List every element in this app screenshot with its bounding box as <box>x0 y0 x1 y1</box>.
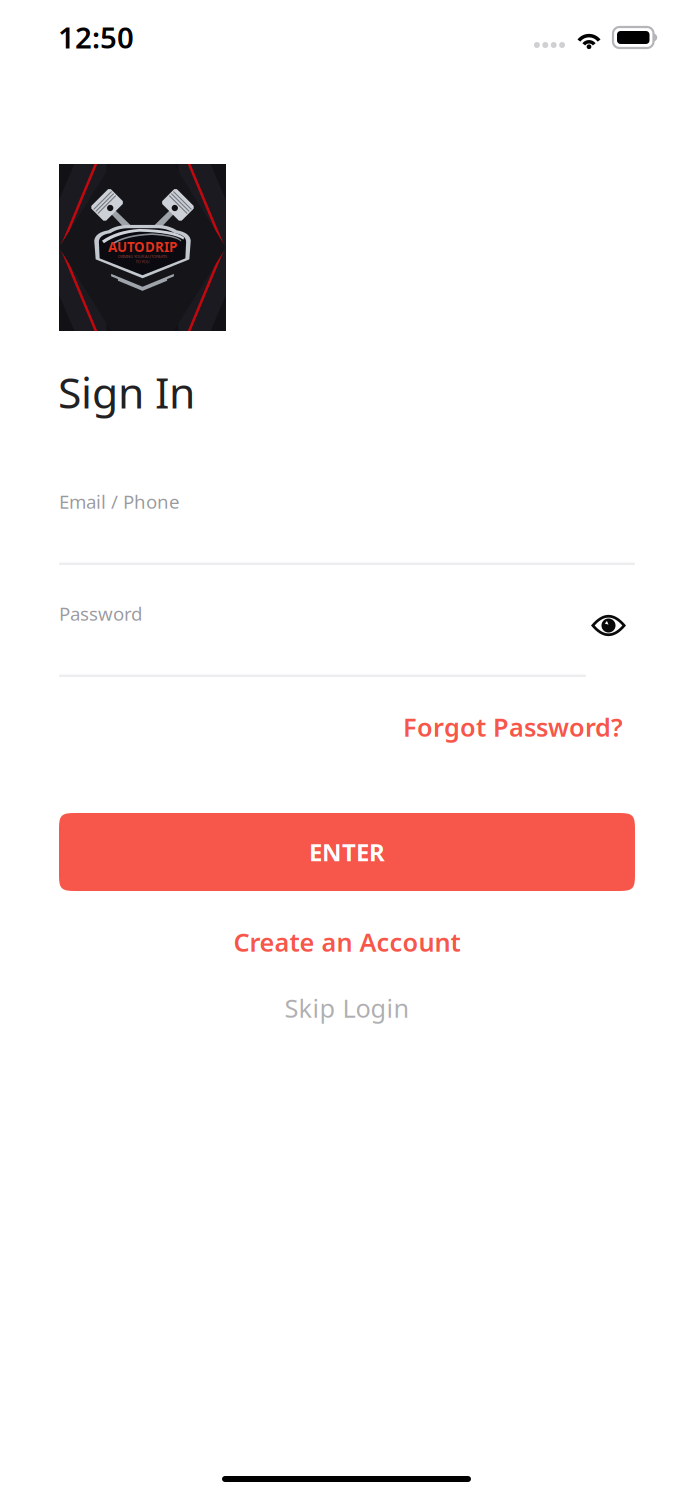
staticText: AUTODRIP <box>108 238 177 256</box>
staticText: 12:50 <box>58 17 134 56</box>
staticText: DRIVING YOUR AUTOPARTS <box>118 254 167 259</box>
button[interactable]: Create an Account <box>59 922 635 962</box>
staticText: ENTER <box>309 836 385 868</box>
button[interactable]: ENTER <box>59 813 635 891</box>
staticText: Forgot Password? <box>403 710 623 744</box>
button[interactable]: Skip Login <box>59 988 635 1028</box>
button[interactable]: Forgot Password? <box>59 706 623 748</box>
staticText: Sign In <box>58 364 195 420</box>
staticText: Password <box>59 601 142 626</box>
staticText: Email / Phone <box>59 489 180 514</box>
staticText: TO YOU <box>135 259 149 264</box>
button[interactable]: Show password <box>576 599 641 652</box>
staticText: Create an Account <box>233 925 460 959</box>
staticText: Skip Login <box>284 991 409 1025</box>
